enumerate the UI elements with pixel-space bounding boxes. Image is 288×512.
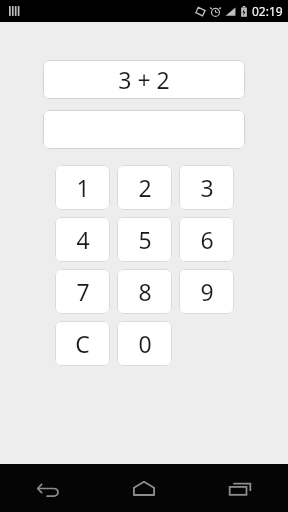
staticText: 9 [200, 276, 214, 307]
button[interactable]: Recent apps [192, 464, 288, 512]
staticText: 4 [76, 224, 90, 255]
button[interactable]: 6 [179, 217, 234, 262]
button[interactable]: 9 [179, 269, 234, 314]
button[interactable]: 5 [117, 217, 172, 262]
staticText: 0 [138, 328, 152, 359]
button[interactable]: C [55, 321, 110, 366]
staticText: 3 + 2 [118, 64, 170, 95]
button[interactable]: Back [0, 464, 96, 512]
staticText: 5 [138, 224, 152, 255]
staticText: 2 [138, 172, 152, 203]
button[interactable]: 4 [55, 217, 110, 262]
staticText: 6 [200, 224, 214, 255]
button[interactable] [43, 110, 245, 149]
staticText: 1 [76, 172, 90, 203]
staticText: 02:19 [252, 3, 283, 19]
button[interactable]: 0 [117, 321, 172, 366]
button[interactable]: 3 [179, 165, 234, 210]
button[interactable]: 3 + 2 [43, 60, 245, 99]
button[interactable]: 2 [117, 165, 172, 210]
staticText: 8 [138, 276, 152, 307]
staticText: 7 [76, 276, 90, 307]
button[interactable]: 8 [117, 269, 172, 314]
button[interactable]: Home [96, 464, 192, 512]
staticText: C [75, 328, 90, 359]
staticText: 3 [200, 172, 214, 203]
button[interactable]: 7 [55, 269, 110, 314]
button[interactable]: 1 [55, 165, 110, 210]
